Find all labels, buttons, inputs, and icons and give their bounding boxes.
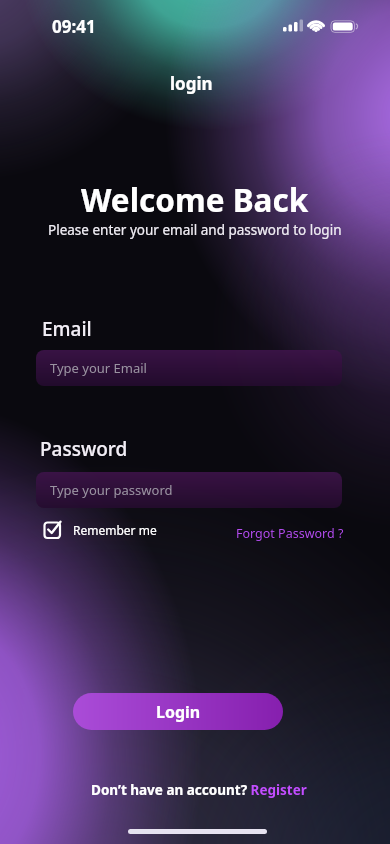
- staticText: Remember me: [73, 522, 157, 538]
- button[interactable]: Forgot Password ?: [236, 525, 344, 542]
- button[interactable]: Type your password: [36, 472, 342, 508]
- staticText: Password: [40, 436, 128, 462]
- staticText: Please enter your email and password to …: [48, 221, 342, 239]
- staticText: Email: [42, 316, 92, 342]
- staticText: 09:41: [52, 15, 96, 38]
- staticText: login: [170, 72, 213, 95]
- button[interactable]: Remember me: [44, 520, 157, 539]
- button[interactable]: Don’t have an account? Register: [91, 781, 307, 799]
- staticText: Welcome Back: [81, 178, 309, 221]
- staticText: Login: [156, 701, 201, 723]
- staticText: Type your password: [50, 481, 173, 499]
- button[interactable]: Type your Email: [36, 350, 342, 386]
- button[interactable]: Login: [73, 693, 283, 730]
- staticText: Type your Email: [50, 359, 147, 377]
